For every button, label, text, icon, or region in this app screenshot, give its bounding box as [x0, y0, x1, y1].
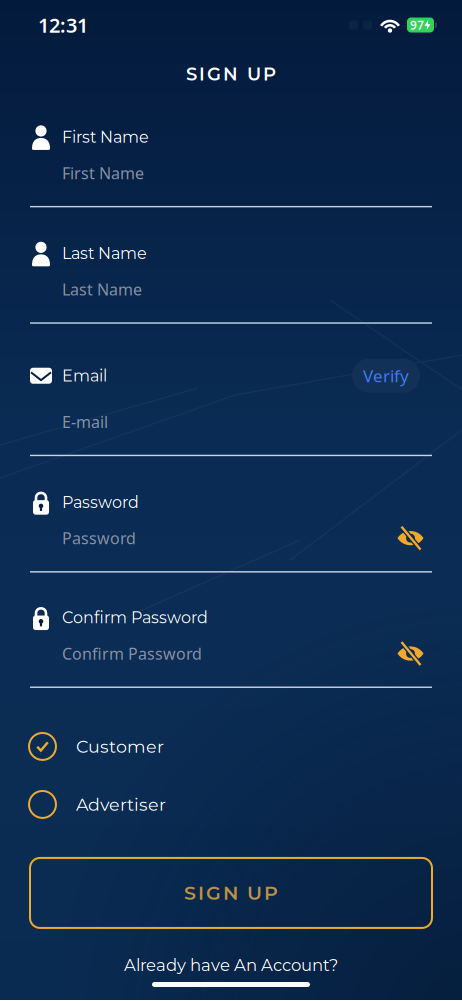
staticText: 12:31 — [38, 11, 88, 39]
staticText: Confirm Password — [62, 608, 208, 627]
staticText: Verify — [363, 364, 409, 387]
button[interactable]: Already have An Account? — [124, 955, 338, 975]
staticText: Password — [62, 527, 136, 549]
button[interactable]: Verify — [352, 359, 420, 393]
staticText: First Name — [62, 162, 144, 184]
staticText: Email — [62, 366, 107, 385]
staticText: First Name — [62, 127, 149, 147]
button[interactable]: S I G N U P — [30, 858, 432, 928]
staticText: S I G N U P — [186, 63, 276, 85]
button[interactable]: Show password — [397, 641, 425, 665]
button[interactable]: Show password — [397, 526, 425, 550]
staticText: S I G N U P — [184, 881, 278, 905]
staticText: 97 — [410, 17, 424, 33]
staticText: Advertiser — [76, 794, 166, 815]
staticText: Confirm Password — [62, 643, 202, 664]
staticText: E-mail — [62, 411, 108, 433]
staticText: Password — [62, 492, 139, 512]
staticText: Last Name — [62, 278, 142, 300]
staticText: Already have An Account? — [124, 955, 338, 975]
button[interactable]: Advertiser — [0, 791, 462, 818]
button[interactable]: Customer — [0, 733, 462, 760]
staticText: Last Name — [62, 244, 147, 263]
staticText: Customer — [76, 736, 164, 757]
